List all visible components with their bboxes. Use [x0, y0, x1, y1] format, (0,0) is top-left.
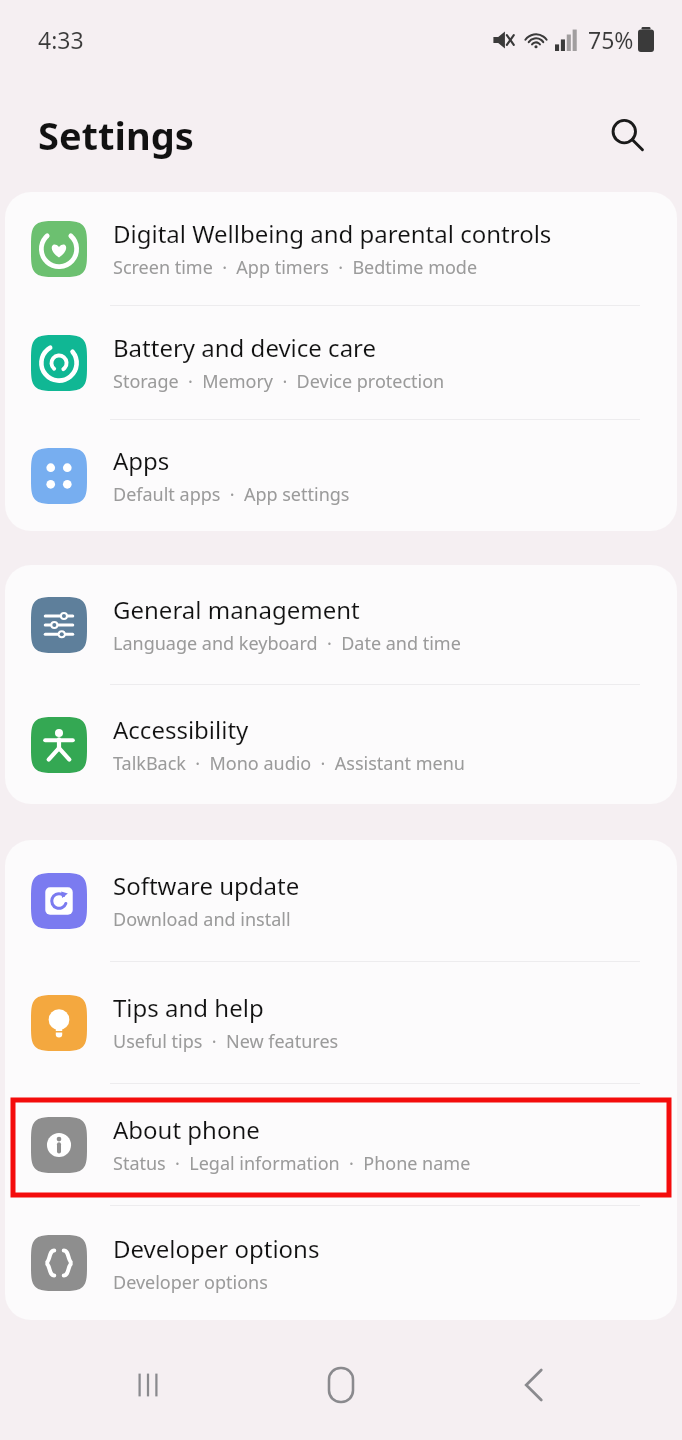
button[interactable]: Accessibility: [5, 685, 677, 804]
button[interactable]: Tips and help: [5, 962, 677, 1083]
staticText: General management: [113, 593, 360, 626]
button[interactable]: Search: [596, 104, 658, 166]
staticText: Developer options: [113, 1270, 268, 1295]
button[interactable]: Digital Wellbeing and parental controls: [5, 192, 677, 305]
staticText: Accessibility: [113, 713, 249, 746]
staticText: Download and install: [113, 907, 291, 932]
button[interactable]: Battery and device care: [5, 306, 677, 419]
staticText: Status · Legal information · Phone name: [113, 1151, 471, 1176]
button[interactable]: General management: [5, 565, 677, 684]
staticText: Storage · Memory · Device protection: [113, 369, 445, 394]
staticText: Apps: [113, 444, 170, 477]
button[interactable]: Apps: [5, 420, 677, 531]
staticText: Language and keyboard · Date and time: [113, 631, 461, 656]
staticText: Settings: [38, 109, 194, 161]
staticText: Developer options: [113, 1232, 320, 1265]
staticText: 75%: [588, 24, 634, 55]
button[interactable]: Developer options: [5, 1206, 677, 1320]
button[interactable]: Home: [296, 1340, 386, 1430]
staticText: Screen time · App timers · Bedtime mode: [113, 255, 478, 280]
staticText: Software update: [113, 869, 300, 902]
button[interactable]: About phone: [5, 1084, 677, 1205]
staticText: 4:33: [38, 24, 84, 55]
staticText: Digital Wellbeing and parental controls: [113, 217, 552, 250]
staticText: Default apps · App settings: [113, 482, 350, 507]
staticText: About phone: [113, 1113, 260, 1146]
staticText: Battery and device care: [113, 331, 377, 364]
staticText: TalkBack · Mono audio · Assistant menu: [113, 751, 465, 776]
button[interactable]: Recent apps: [103, 1340, 193, 1430]
button[interactable]: Software update: [5, 840, 677, 961]
staticText: Tips and help: [113, 991, 264, 1024]
button[interactable]: Back: [489, 1340, 579, 1430]
staticText: Useful tips · New features: [113, 1029, 339, 1054]
